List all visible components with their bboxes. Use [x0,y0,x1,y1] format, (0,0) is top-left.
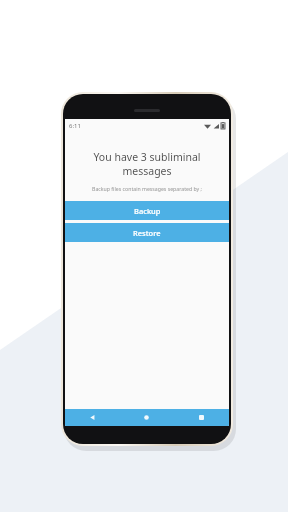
button[interactable]: Restore [65,223,229,242]
staticText: 6:11 [69,122,81,130]
button[interactable]: Back [65,409,119,426]
staticText: Restore [133,228,161,238]
button[interactable]: Backup [65,201,229,220]
button[interactable]: Home [119,409,174,426]
staticText: Backup [134,206,161,216]
staticText: You have 3 subliminal messages [71,150,223,178]
button[interactable]: Recent apps [174,409,229,426]
staticText: Backup files contain messages separated … [71,185,223,192]
